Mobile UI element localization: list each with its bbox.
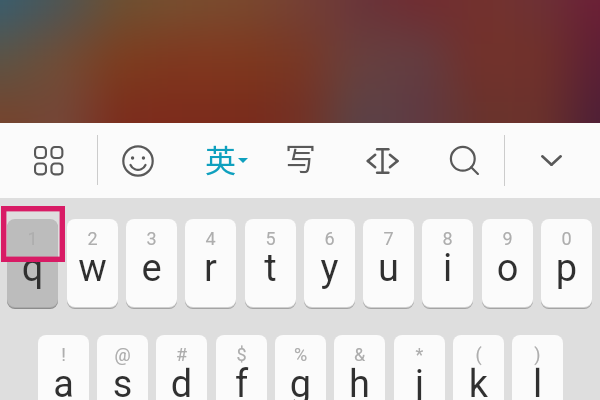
staticText: h xyxy=(334,362,385,400)
button[interactable]: ! xyxy=(38,335,89,400)
staticText: 3 xyxy=(126,228,177,249)
button[interactable]: 5 xyxy=(245,219,296,307)
button[interactable]: Emoji xyxy=(117,140,158,181)
button[interactable]: 6 xyxy=(304,219,355,307)
button[interactable]: * xyxy=(394,335,445,400)
button[interactable]: 4 xyxy=(185,219,236,307)
button[interactable]: % xyxy=(275,335,326,400)
staticText: k xyxy=(453,362,504,400)
staticText: * xyxy=(394,344,445,365)
button[interactable]: 9 xyxy=(482,219,533,307)
staticText: q xyxy=(7,246,58,291)
button[interactable]: Hide keyboard xyxy=(531,140,572,181)
staticText: l xyxy=(512,362,563,400)
button[interactable]: Keyboard layouts xyxy=(28,140,69,181)
button[interactable]: 7 xyxy=(363,219,414,307)
staticText: 6 xyxy=(304,228,355,249)
staticText: 8 xyxy=(422,228,473,249)
staticText: a xyxy=(38,362,89,400)
staticText: i xyxy=(422,246,473,291)
staticText: r xyxy=(185,246,236,291)
staticText: & xyxy=(334,344,385,365)
button[interactable]: # xyxy=(156,335,207,400)
staticText: y xyxy=(304,246,355,291)
staticText: $ xyxy=(216,344,267,365)
staticText: u xyxy=(363,246,414,291)
staticText: % xyxy=(275,344,326,365)
button[interactable]: ) xyxy=(512,335,563,400)
staticText: d xyxy=(156,362,207,400)
staticText: 0 xyxy=(541,228,592,249)
button[interactable]: 英 xyxy=(196,135,254,186)
staticText: g xyxy=(275,362,326,400)
staticText: ) xyxy=(512,344,563,365)
button[interactable]: Move cursor xyxy=(362,140,403,181)
staticText: ( xyxy=(453,344,504,365)
staticText: j xyxy=(394,362,445,400)
staticText: 4 xyxy=(185,228,236,249)
staticText: 7 xyxy=(363,228,414,249)
staticText: p xyxy=(541,246,592,291)
button[interactable]: & xyxy=(334,335,385,400)
staticText: o xyxy=(482,246,533,291)
button[interactable]: Search xyxy=(442,138,483,179)
staticText: 英 xyxy=(205,136,236,181)
staticText: 写 xyxy=(285,134,316,179)
staticText: 9 xyxy=(482,228,533,249)
staticText: s xyxy=(97,362,148,400)
staticText: 5 xyxy=(245,228,296,249)
staticText: ! xyxy=(38,344,89,365)
staticText: # xyxy=(156,344,207,365)
button[interactable]: 2 xyxy=(67,219,118,307)
button[interactable]: 0 xyxy=(541,219,592,307)
button[interactable]: 3 xyxy=(126,219,177,307)
button[interactable]: $ xyxy=(216,335,267,400)
button[interactable]: 8 xyxy=(422,219,473,307)
staticText: t xyxy=(245,246,296,291)
staticText: f xyxy=(216,362,267,400)
staticText: 2 xyxy=(67,228,118,249)
button[interactable]: 写 xyxy=(279,125,320,176)
button[interactable]: 1 xyxy=(7,219,58,307)
button[interactable]: @ xyxy=(97,335,148,400)
staticText: @ xyxy=(97,344,148,365)
button[interactable]: ( xyxy=(453,335,504,400)
staticText: w xyxy=(67,246,118,291)
staticText: e xyxy=(126,246,177,291)
